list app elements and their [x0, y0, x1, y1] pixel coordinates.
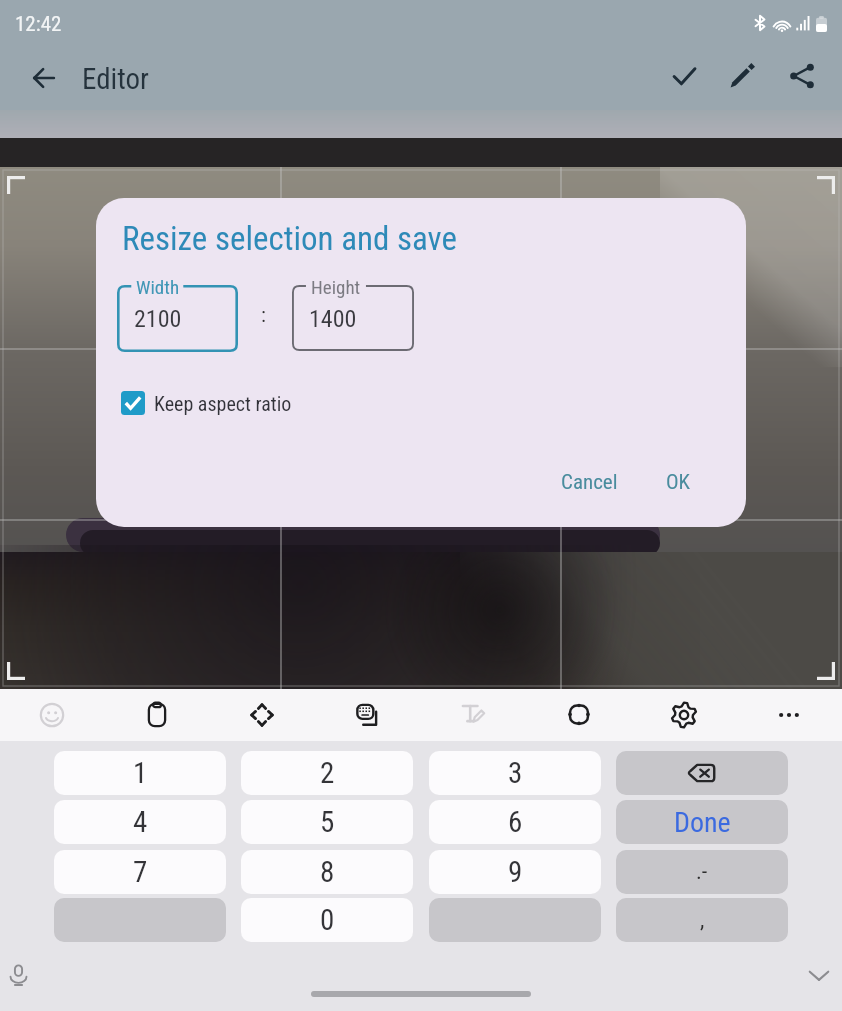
staticText: 1 — [133, 756, 148, 790]
staticText: , — [700, 907, 705, 933]
button[interactable]: Emoji — [26, 689, 78, 741]
staticText: 2100 — [134, 305, 182, 333]
button[interactable]: 9 — [429, 850, 601, 894]
button[interactable]: 2 — [241, 751, 413, 795]
button[interactable]: Hide keyboard — [802, 958, 836, 992]
staticText: 9 — [508, 855, 523, 889]
button[interactable]: 7 — [54, 850, 226, 894]
button[interactable]: 8 — [241, 850, 413, 894]
staticText: Editor — [82, 62, 149, 96]
button[interactable]: Move cursor — [236, 689, 288, 741]
staticText: 7 — [133, 855, 148, 889]
staticText: 3 — [508, 756, 523, 790]
button[interactable]: Keyboard layout — [342, 689, 394, 741]
button[interactable]: OK — [652, 462, 705, 503]
button[interactable]: 3 — [429, 751, 601, 795]
staticText: Cancel — [561, 470, 618, 495]
button[interactable]: Cancel — [547, 462, 632, 503]
button[interactable]: Key — [429, 898, 601, 942]
button[interactable]: Voice input — [1, 958, 35, 992]
staticText: Width — [136, 276, 180, 298]
button[interactable]: Keep aspect ratio — [117, 387, 296, 419]
button[interactable]: Navigate up — [18, 52, 70, 104]
button[interactable]: Key — [54, 898, 226, 942]
staticText: 2 — [320, 756, 335, 790]
staticText: Height — [311, 276, 361, 298]
button[interactable]: Share — [776, 50, 828, 102]
staticText: : — [261, 303, 266, 328]
button[interactable]: 4 — [54, 800, 226, 844]
staticText: Resize selection and save — [122, 219, 457, 258]
staticText: 0 — [320, 903, 335, 937]
button[interactable]: 1 — [54, 751, 226, 795]
staticText: 1400 — [309, 305, 357, 333]
staticText: 6 — [508, 805, 523, 839]
button[interactable]: Done — [616, 800, 788, 844]
button[interactable]: Sticker — [553, 689, 605, 741]
button[interactable]: .- — [616, 850, 788, 894]
staticText: 5 — [320, 805, 335, 839]
button[interactable]: Handwriting — [447, 689, 499, 741]
button[interactable]: More options — [763, 689, 815, 741]
button[interactable]: Height — [292, 285, 414, 351]
staticText: .- — [696, 859, 708, 885]
button[interactable]: Done — [658, 50, 710, 102]
staticText: 8 — [320, 855, 335, 889]
button[interactable]: Settings — [658, 689, 710, 741]
button[interactable]: 6 — [429, 800, 601, 844]
button[interactable]: 5 — [241, 800, 413, 844]
button[interactable] — [616, 751, 788, 795]
staticText: 12:42 — [15, 12, 62, 37]
staticText: OK — [666, 470, 691, 495]
button[interactable]: , — [616, 898, 788, 942]
button[interactable]: Edit — [716, 50, 768, 102]
staticText: 4 — [133, 805, 148, 839]
staticText: Keep aspect ratio — [154, 392, 292, 415]
staticText: Done — [674, 806, 731, 839]
button[interactable]: Width — [117, 285, 238, 352]
button[interactable]: Clipboard — [131, 689, 183, 741]
button[interactable]: 0 — [241, 898, 413, 942]
